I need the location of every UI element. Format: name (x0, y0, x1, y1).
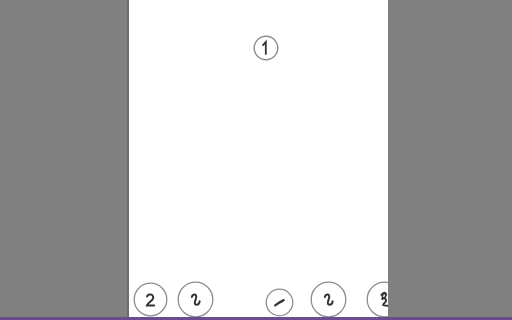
button[interactable]: Cursive tool (177, 281, 214, 318)
button[interactable]: Scribble tool (366, 281, 403, 318)
button[interactable]: Tool 2 (133, 282, 168, 317)
button[interactable]: Marker 1 (253, 35, 279, 61)
button[interactable]: Pen tool (265, 288, 294, 317)
button[interactable]: Tool 2 alternate (310, 281, 347, 318)
